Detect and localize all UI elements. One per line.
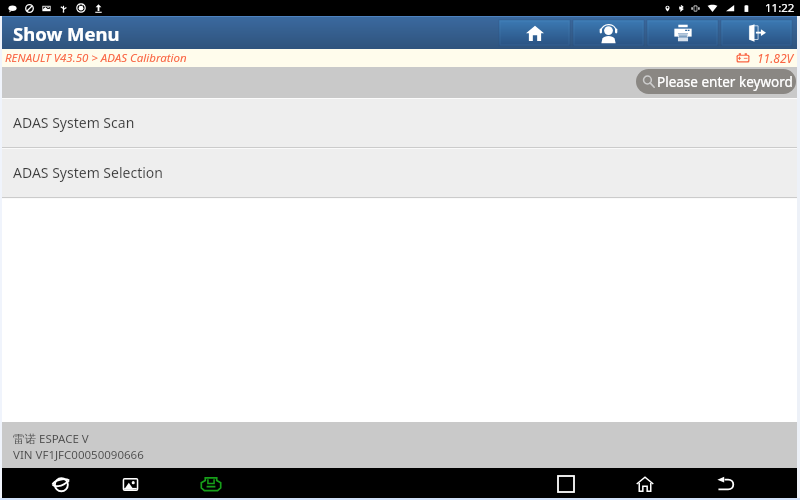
staticText: Show Menu [13, 21, 120, 46]
button[interactable]: Home [499, 20, 570, 46]
button[interactable]: Please enter keyword [636, 69, 796, 94]
button[interactable]: ADAS System Selection [0, 149, 800, 197]
staticText: ADAS System Scan [13, 113, 135, 132]
button[interactable]: Back [711, 468, 741, 500]
button[interactable]: Exit [721, 20, 792, 46]
staticText: 雷诺 ESPACE V [13, 431, 89, 447]
button[interactable]: Support [573, 20, 644, 46]
staticText: 11:22 [765, 0, 795, 16]
button[interactable]: VCI [196, 468, 226, 500]
button[interactable]: Browser [46, 468, 76, 500]
staticText: RENAULT V43.50 > ADAS Calibration [5, 50, 187, 66]
button[interactable]: ADAS System Scan [0, 99, 800, 147]
button[interactable]: Gallery [115, 468, 145, 500]
staticText: VIN VF1JFC00050090666 [13, 447, 144, 463]
staticText: ADAS System Selection [13, 163, 163, 182]
button[interactable]: Home [630, 468, 660, 500]
button[interactable]: Print [647, 20, 718, 46]
button[interactable]: Recents [551, 468, 581, 500]
staticText: 11.82V [757, 50, 794, 66]
staticText: Please enter keyword [657, 73, 793, 91]
